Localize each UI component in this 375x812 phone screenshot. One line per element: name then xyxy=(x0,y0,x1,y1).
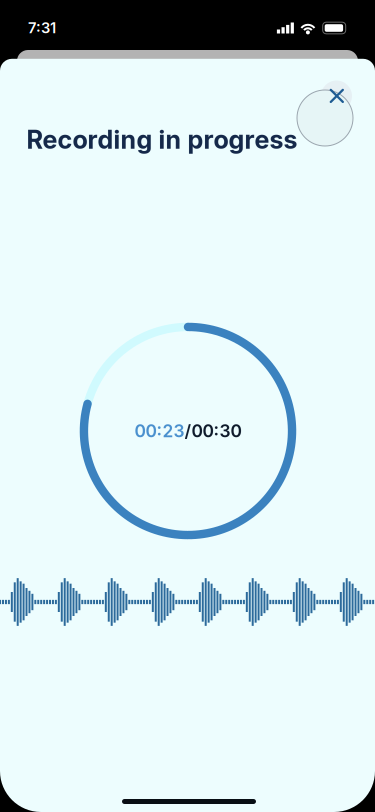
staticText: /00:30 xyxy=(184,420,241,441)
staticText: 00:23 xyxy=(134,420,184,441)
staticText: 7:31 xyxy=(28,19,56,37)
button[interactable]: Close xyxy=(297,90,353,146)
staticText: Recording in progress xyxy=(26,124,297,155)
